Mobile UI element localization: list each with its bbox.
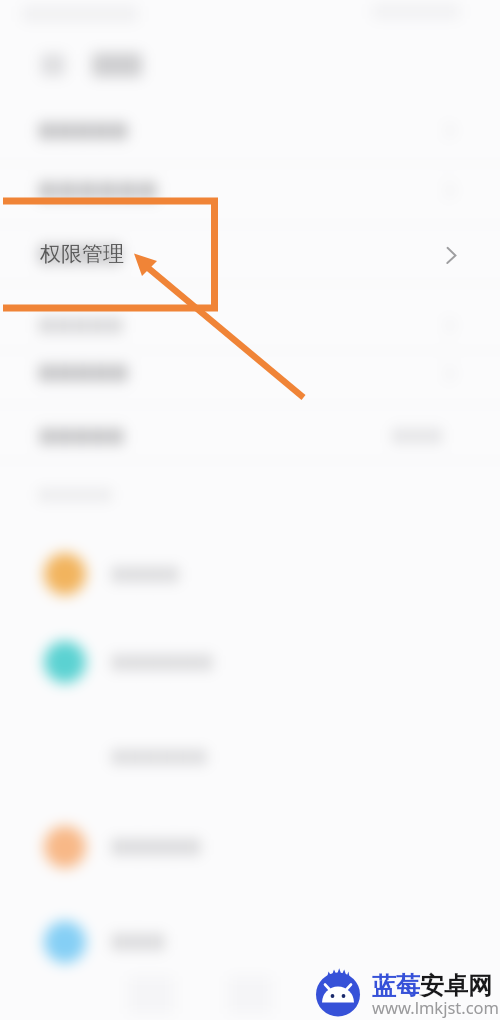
button[interactable]: 蓝莓安卓网 logo [0, 0, 500, 1020]
staticText: www.lmkjst.com [372, 996, 500, 1018]
other: 蓝莓安卓网 logo [314, 963, 362, 1011]
staticText: 安卓网 [420, 971, 492, 1001]
other: Open permission manager [442, 243, 462, 267]
button[interactable]: 权限管理 [0, 213, 500, 293]
staticText: 蓝莓 [372, 971, 420, 1001]
staticText: 权限管理 [40, 241, 124, 267]
